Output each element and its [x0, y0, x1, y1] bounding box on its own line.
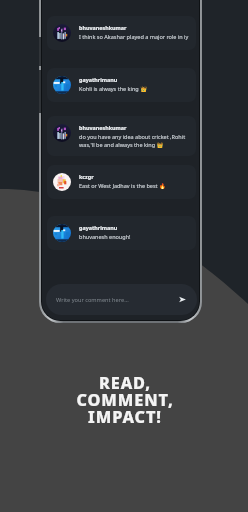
button[interactable]: gayathrimanu [47, 68, 196, 102]
staticText: East or West Jadhav is the best 🔥 [79, 182, 166, 189]
staticText: bhuvaneshkumar [79, 24, 127, 31]
staticText: kczgr [79, 173, 94, 180]
button[interactable]: kczgr [47, 165, 196, 199]
button[interactable]: bhuvaneshkumar [47, 116, 196, 156]
staticText: bhuvanesh enough! [79, 233, 131, 240]
staticText: gayathrimanu [79, 224, 118, 231]
staticText: READ, COMMENT, IMPACT! [1, 372, 248, 428]
staticText: I think so Akashar played a major role i… [79, 33, 189, 40]
staticText: gayathrimanu [79, 76, 118, 83]
staticText: was,'ll be and always the king 👑 [79, 141, 164, 148]
staticText: bhuvaneshkumar [79, 124, 127, 131]
staticText: do you have any idea about cricket ,Rohi… [79, 133, 186, 140]
staticText: Write your comment here... [56, 296, 129, 304]
button[interactable]: bhuvaneshkumar [47, 16, 196, 50]
other: Send [179, 296, 186, 303]
button[interactable]: Write your comment here... [46, 284, 197, 315]
button[interactable]: gayathrimanu [47, 216, 196, 250]
staticText: Kohli is always the king 👑 [79, 85, 147, 92]
